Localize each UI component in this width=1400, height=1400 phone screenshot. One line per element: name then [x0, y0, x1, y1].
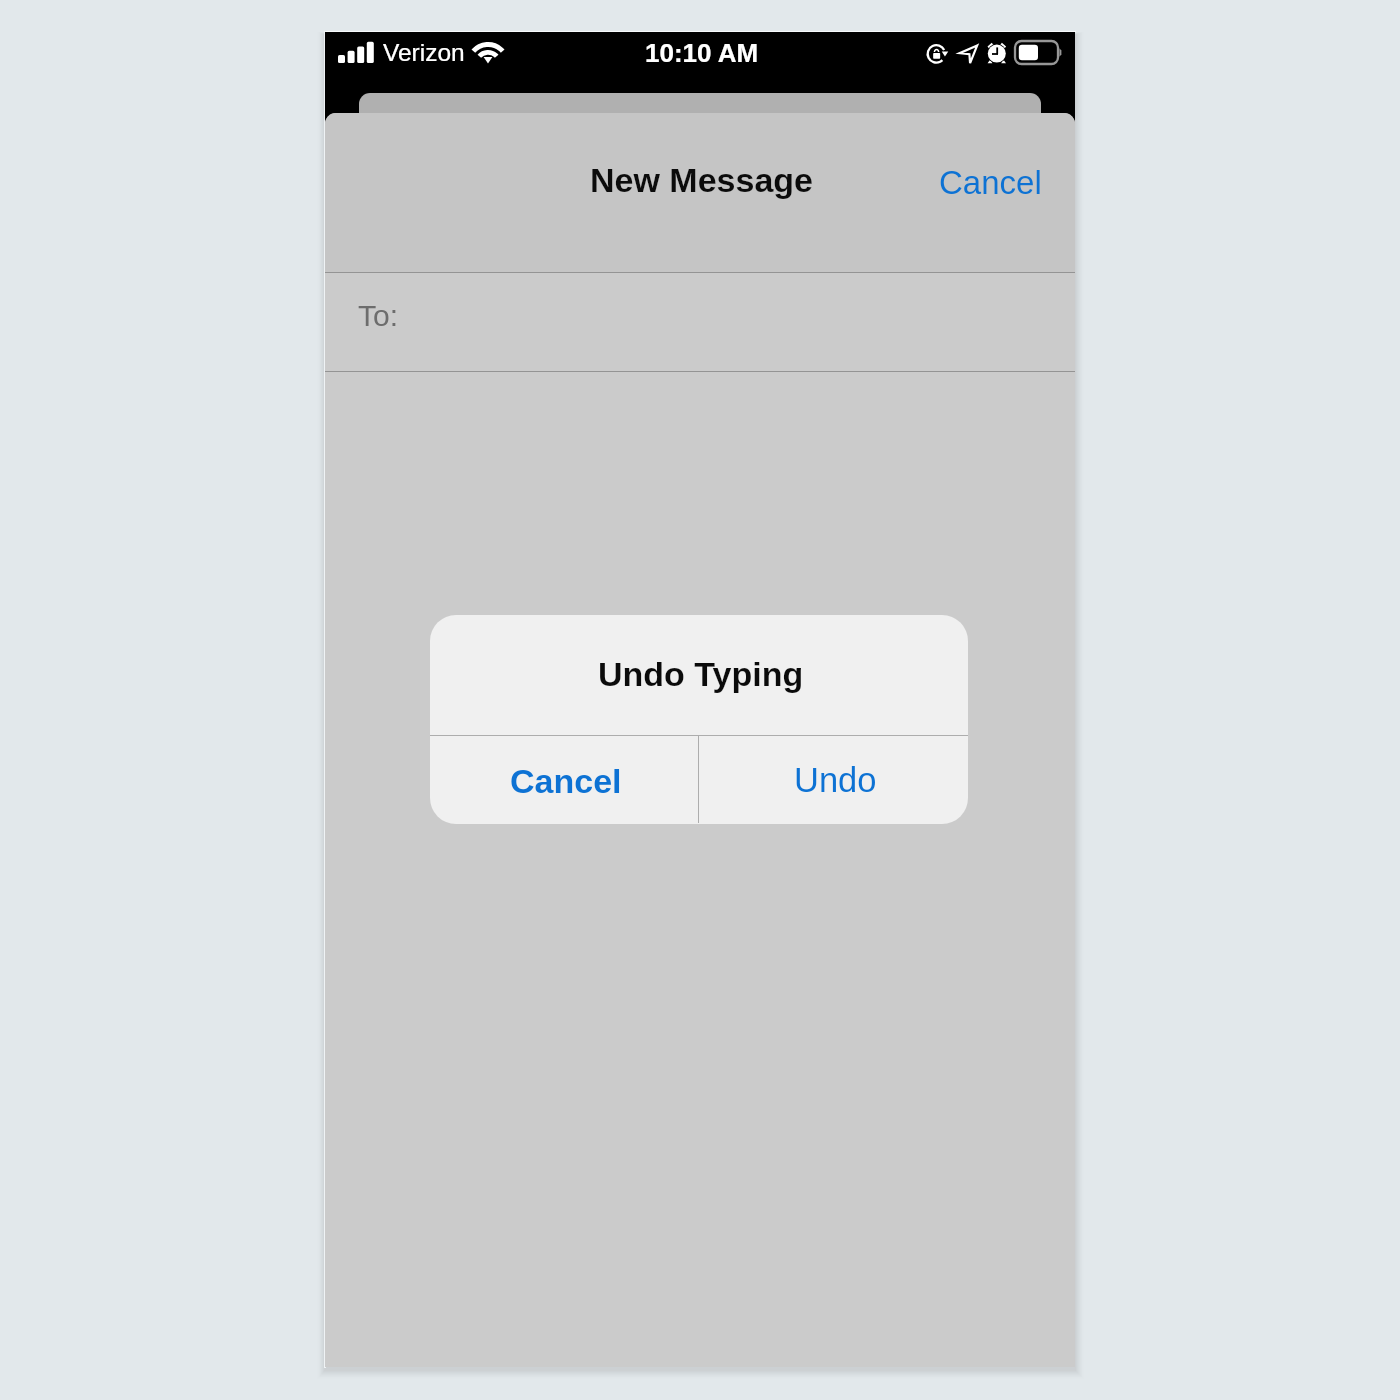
- staticText: New Message: [590, 161, 813, 199]
- staticText: 10:10 AM: [645, 38, 759, 67]
- staticText: Undo Typing: [598, 655, 804, 693]
- other: Rotation lock: [928, 44, 952, 68]
- staticText: Cancel: [939, 164, 1042, 201]
- button[interactable]: Undo: [699, 736, 968, 823]
- other: Alarm: [987, 42, 1009, 66]
- staticText: To:: [358, 299, 399, 333]
- staticText: Verizon: [383, 39, 465, 66]
- button[interactable]: Cancel: [915, 152, 1066, 213]
- staticText: Cancel: [510, 762, 622, 800]
- staticText: Undo: [794, 761, 877, 800]
- button[interactable]: Cancel: [430, 736, 698, 823]
- other: Location: [958, 44, 979, 68]
- button[interactable]: To:: [325, 273, 1075, 371]
- other: Battery: [1015, 41, 1062, 64]
